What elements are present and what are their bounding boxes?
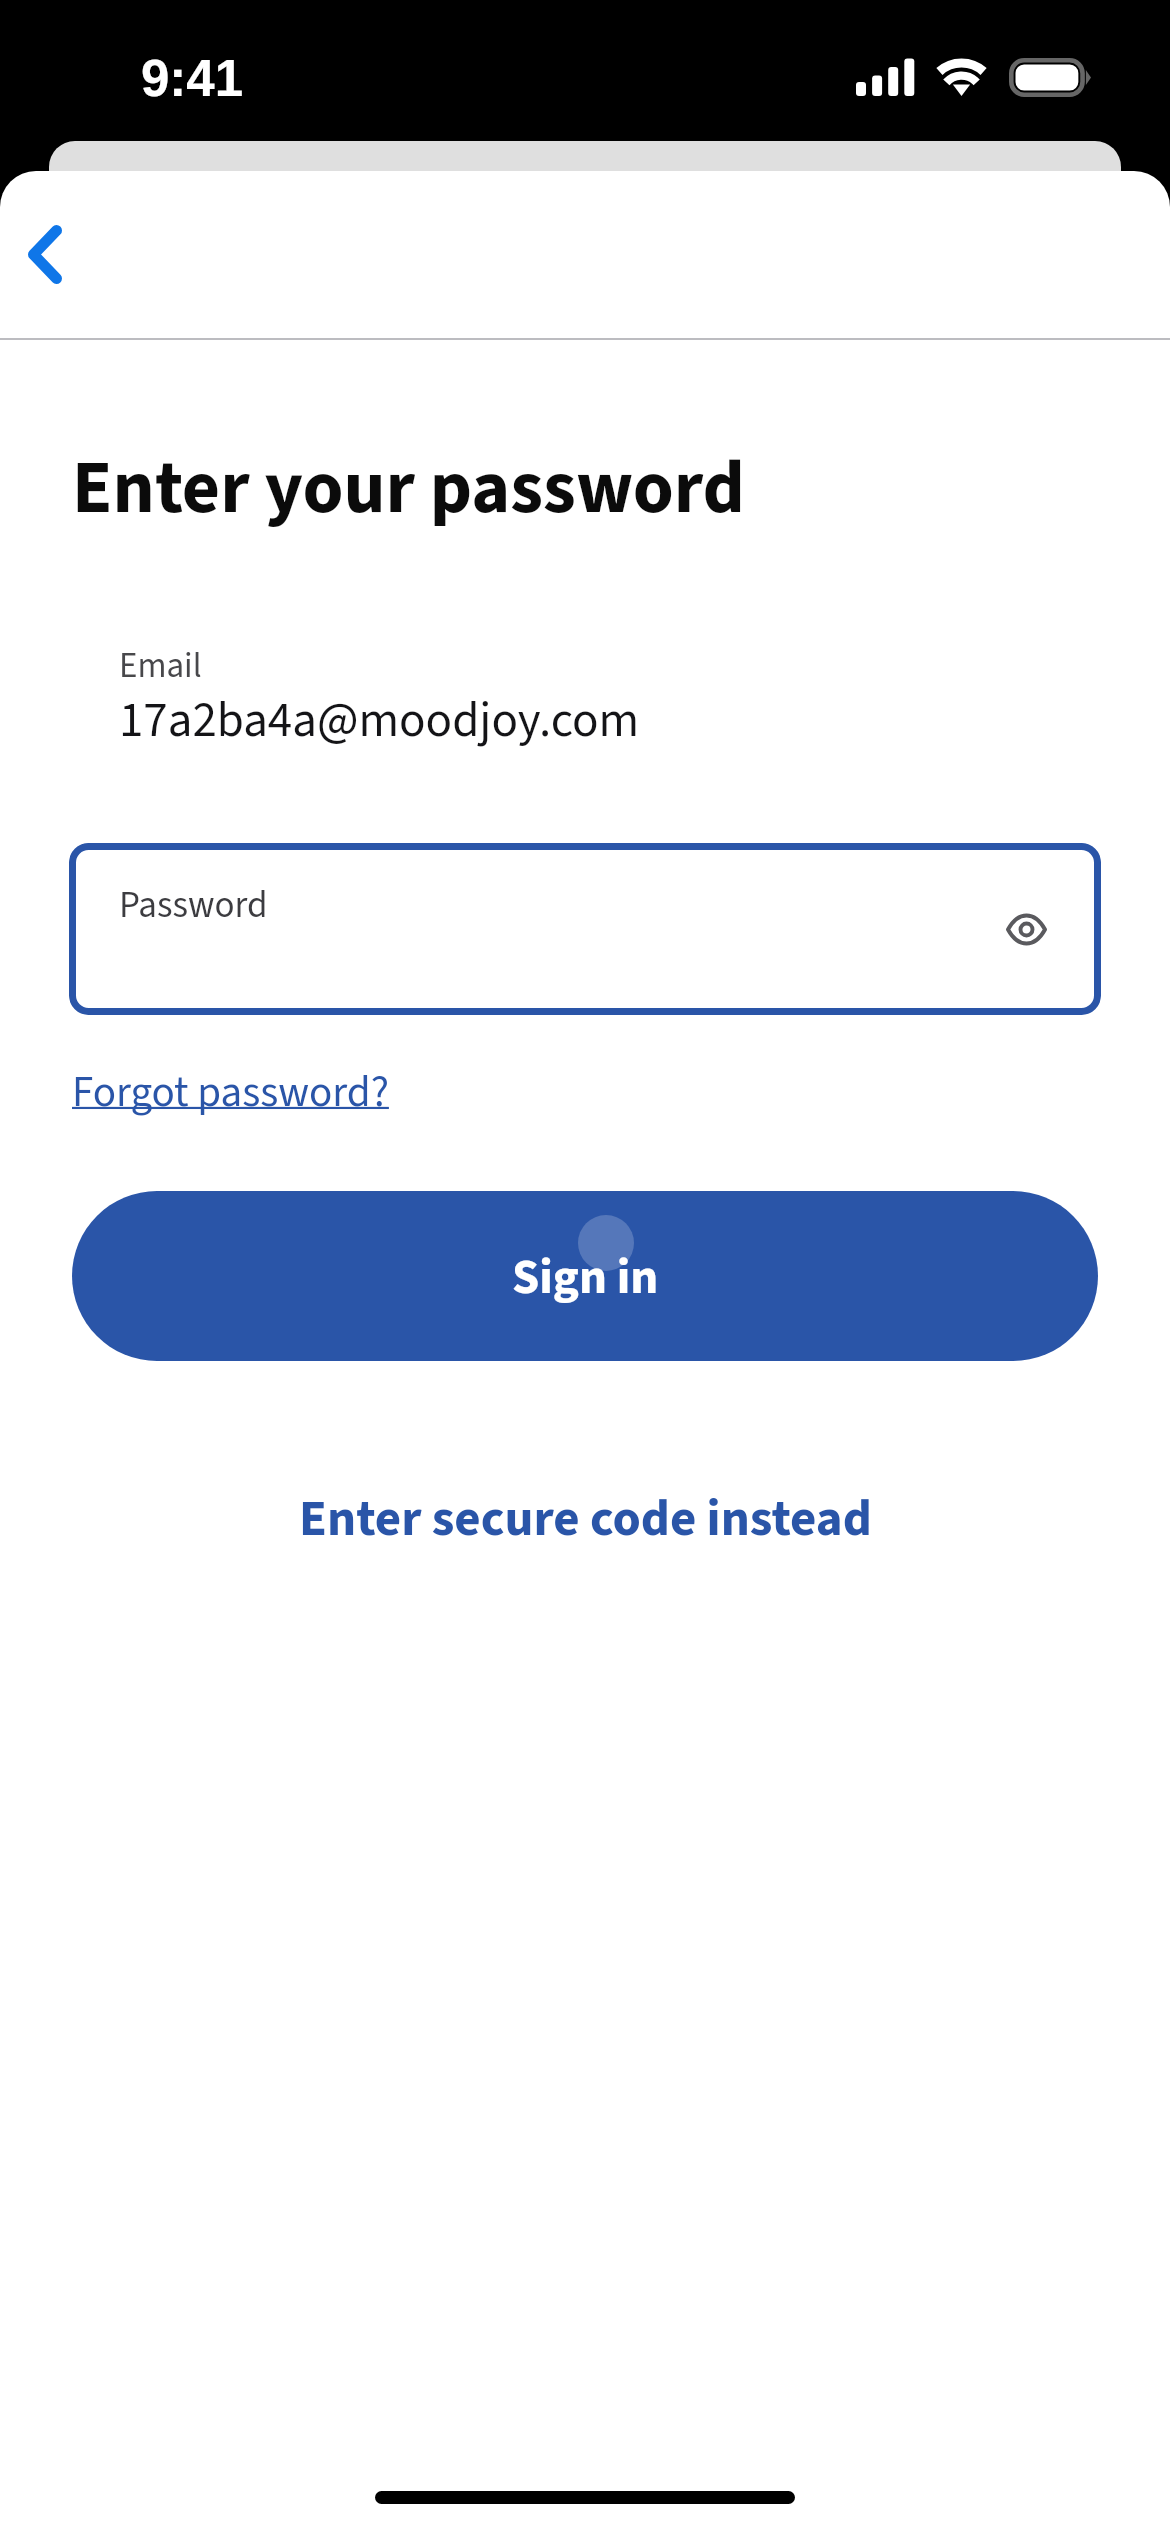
button[interactable]: Forgot password? bbox=[60, 1062, 405, 1136]
staticText: Enter your password bbox=[72, 436, 745, 541]
staticText: Email bbox=[119, 641, 202, 691]
button[interactable]: Password bbox=[69, 843, 1101, 1015]
staticText: Sign in bbox=[512, 1243, 659, 1313]
staticText: Forgot password? bbox=[72, 1062, 389, 1123]
button[interactable]: Show password bbox=[986, 889, 1066, 969]
button[interactable]: Sign in bbox=[72, 1191, 1098, 1361]
button[interactable]: Back bbox=[0, 196, 96, 314]
button[interactable]: Enter secure code instead bbox=[280, 1477, 890, 1561]
staticText: Enter secure code instead bbox=[299, 1483, 872, 1556]
staticText: 9:41 bbox=[141, 50, 244, 107]
staticText: Password bbox=[119, 879, 268, 932]
staticText: 17a2ba4a@moodjoy.com bbox=[119, 686, 640, 756]
